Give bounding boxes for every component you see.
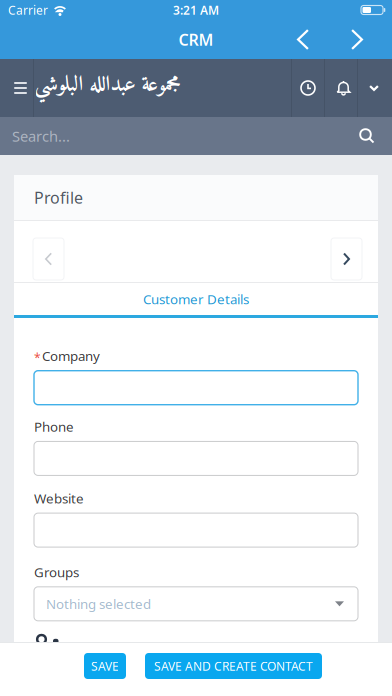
button[interactable] [297,29,351,50]
button[interactable] [351,29,392,50]
button[interactable] [300,80,336,96]
staticText: Groups [34,563,79,581]
button[interactable]: SAVE AND CREATE CONTACT [145,653,322,679]
staticText: * [34,350,41,366]
button[interactable]: SAVE [84,653,126,679]
staticText: Company [42,347,100,365]
staticText: Profile [34,187,83,208]
button[interactable] [369,85,392,91]
staticText: Nothing selected [46,595,151,613]
staticText: SAVE [91,658,119,674]
staticText: SAVE AND CREATE CONTACT [154,658,313,674]
button[interactable] [33,238,64,280]
button[interactable] [359,128,392,144]
staticText: 3:21 AM [173,2,219,18]
button[interactable]: Nothing selected [34,587,358,621]
button[interactable]: Customer Details [143,290,249,308]
button[interactable] [34,513,358,547]
staticText: Website [34,489,84,507]
staticText: Search... [12,126,70,146]
button[interactable] [0,82,34,94]
button[interactable] [34,441,358,475]
staticText: Phone [34,418,74,435]
button[interactable] [331,238,362,280]
staticText: Customer Details [143,290,249,308]
button[interactable] [34,371,358,405]
button[interactable] [336,80,369,96]
staticText: CRM [178,29,213,50]
staticText: Carrier [8,2,48,18]
staticText: مجموعة عبدالله البلوشي [34,66,180,104]
